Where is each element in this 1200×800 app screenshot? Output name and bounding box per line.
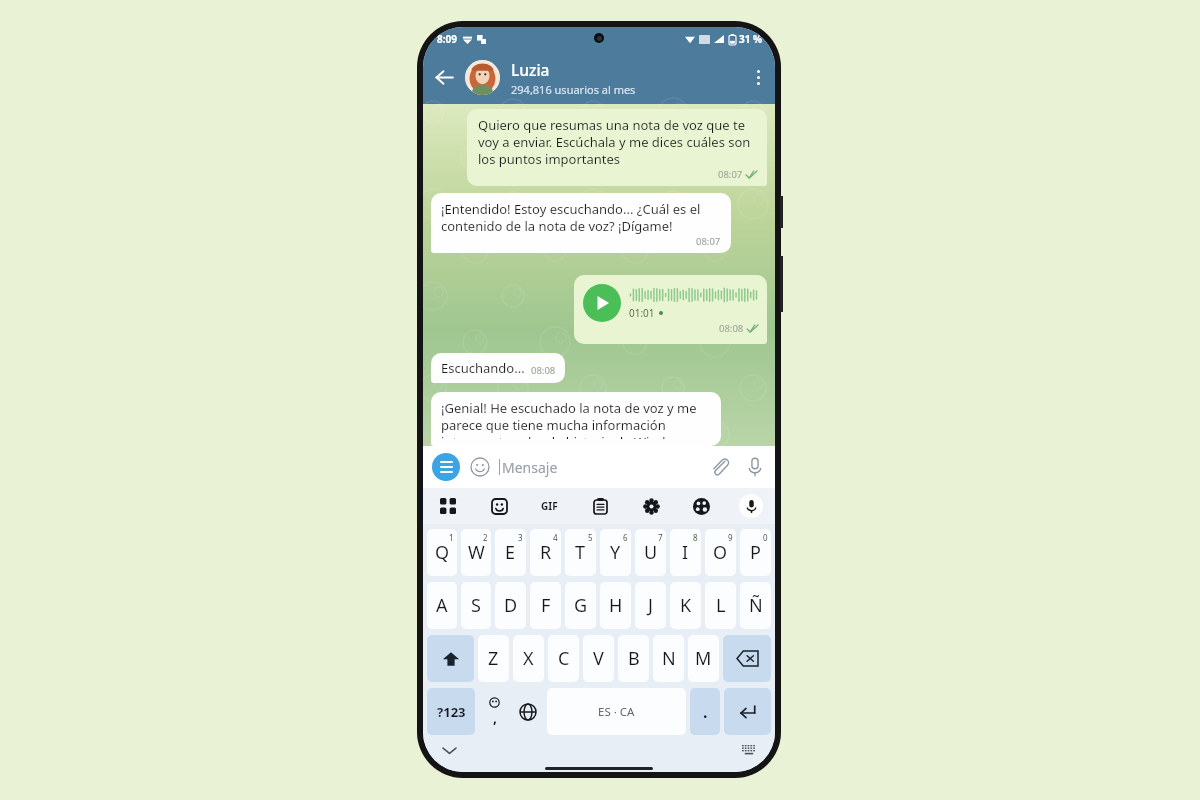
button[interactable]: Enter	[724, 688, 771, 735]
button[interactable]: Play voice message	[574, 275, 767, 344]
staticText: 8:09	[437, 32, 457, 46]
button[interactable]: Apps	[435, 493, 461, 519]
button[interactable]: Themes	[688, 493, 714, 519]
button[interactable]: Escuchando...	[431, 353, 565, 383]
staticText: B	[628, 646, 640, 671]
staticText: V	[593, 646, 604, 671]
staticText: 4	[553, 532, 558, 543]
button[interactable]: Change language	[513, 688, 543, 735]
staticText: 3	[518, 532, 523, 543]
button[interactable]: Back	[423, 51, 465, 104]
staticText: Y	[610, 540, 621, 565]
staticText: I	[682, 540, 689, 565]
staticText: W	[468, 540, 485, 565]
staticText: 08:08	[531, 364, 556, 377]
button[interactable]: F	[530, 582, 561, 629]
staticText: O	[713, 540, 728, 565]
button[interactable]: Settings	[638, 493, 664, 519]
staticText: 6	[623, 532, 628, 543]
button[interactable]: Stickers	[486, 493, 512, 519]
button[interactable]: Emoji and comma	[479, 688, 509, 735]
button[interactable]: .	[690, 688, 720, 735]
staticText: Luzia	[511, 59, 550, 80]
staticText: Quiero que resumas una nota de voz que t…	[478, 116, 757, 168]
button[interactable]: G	[565, 582, 596, 629]
staticText: U	[644, 540, 658, 565]
button[interactable]: O	[705, 529, 736, 576]
staticText: M	[695, 646, 712, 671]
staticText: N	[662, 646, 676, 671]
staticText: ¡Genial! He escuchado la nota de voz y m…	[441, 399, 711, 439]
button[interactable]: Voice input	[739, 494, 763, 518]
button[interactable]: More options	[741, 51, 775, 104]
staticText: Escuchando...	[441, 359, 525, 377]
button[interactable]: I	[670, 529, 701, 576]
button[interactable]: ¡Genial! He escuchado la nota de voz y m…	[431, 392, 721, 446]
button[interactable]: ES · CA	[547, 688, 686, 735]
button[interactable]: Quiero que resumas una nota de voz que t…	[467, 109, 767, 186]
button[interactable]: Record voice	[744, 456, 766, 478]
button[interactable]: H	[600, 582, 631, 629]
button[interactable]: Y	[600, 529, 631, 576]
staticText: 08:08	[719, 322, 744, 335]
button[interactable]: P	[740, 529, 771, 576]
button[interactable]: Hide keyboard	[439, 740, 459, 760]
button[interactable]: ¡Entendido! Estoy escuchando... ¿Cuál es…	[431, 193, 731, 253]
button[interactable]: V	[583, 635, 614, 682]
button[interactable]: Shift	[427, 635, 474, 682]
button[interactable]: C	[548, 635, 579, 682]
staticText: K	[680, 593, 692, 618]
button[interactable]: W	[461, 529, 491, 576]
staticText: 8	[693, 532, 698, 543]
button[interactable]: Emoji	[470, 457, 490, 477]
staticText: 7	[658, 532, 663, 543]
button[interactable]: Keyboard settings	[739, 740, 759, 760]
button[interactable]: A	[427, 582, 457, 629]
button[interactable]: L	[705, 582, 736, 629]
staticText: G	[574, 593, 588, 618]
button[interactable]: S	[461, 582, 491, 629]
button[interactable]: U	[635, 529, 666, 576]
staticText: ES · CA	[598, 704, 635, 720]
button[interactable]: GIF	[536, 497, 562, 515]
staticText: ?123	[437, 703, 466, 721]
button[interactable]: Menu	[432, 453, 460, 481]
button[interactable]: Z	[478, 635, 509, 682]
button[interactable]: D	[495, 582, 526, 629]
staticText: 01:01	[629, 306, 655, 320]
button[interactable]: Q	[427, 529, 457, 576]
button[interactable]: N	[653, 635, 684, 682]
button[interactable]: R	[530, 529, 561, 576]
button[interactable]: ?123	[427, 688, 475, 735]
staticText: H	[609, 593, 623, 618]
button[interactable]: M	[688, 635, 719, 682]
staticText: 1	[449, 532, 454, 543]
staticText: J	[648, 593, 653, 618]
button[interactable]: J	[635, 582, 666, 629]
staticText: 31 %	[739, 32, 763, 46]
staticText: X	[523, 646, 534, 671]
button[interactable]: Clipboard	[587, 493, 613, 519]
button[interactable]: Luzia	[465, 51, 741, 104]
staticText: E	[505, 540, 516, 565]
staticText: Mensaje	[502, 458, 709, 477]
staticText: P	[750, 540, 761, 565]
staticText: T	[575, 540, 586, 565]
staticText: F	[541, 593, 551, 618]
button[interactable]: T	[565, 529, 596, 576]
staticText: GIF	[541, 499, 558, 513]
button[interactable]: K	[670, 582, 701, 629]
button[interactable]: Play voice message	[583, 284, 621, 322]
button[interactable]: Attach	[709, 456, 731, 478]
staticText: R	[540, 540, 552, 565]
staticText: 2	[483, 532, 488, 543]
staticText: 08:07	[696, 235, 721, 248]
button[interactable]: E	[495, 529, 526, 576]
button[interactable]: Ñ	[740, 582, 771, 629]
staticText: L	[716, 593, 726, 618]
staticText: ,	[493, 708, 497, 727]
button[interactable]: Backspace	[723, 635, 771, 682]
button[interactable]: B	[618, 635, 649, 682]
button[interactable]: X	[513, 635, 544, 682]
staticText: 08:07	[718, 168, 743, 181]
